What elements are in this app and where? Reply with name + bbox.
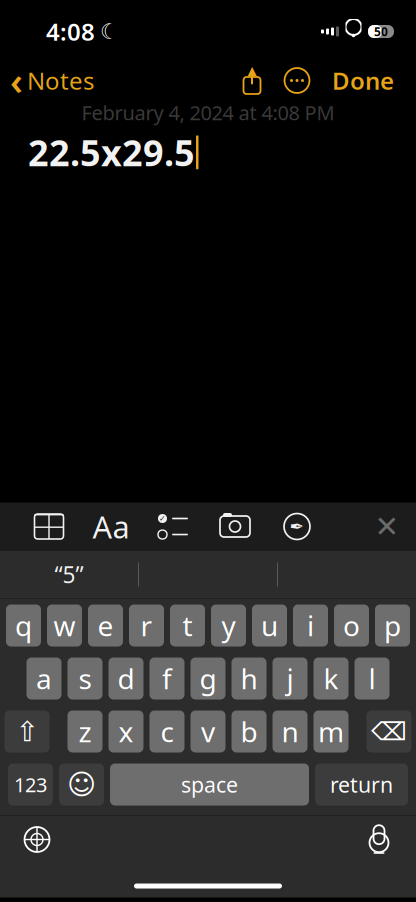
button[interactable]: space [110, 763, 309, 805]
staticText: v [201, 713, 215, 750]
staticText: o [343, 607, 360, 644]
staticText: p [384, 607, 401, 644]
staticText: a [36, 660, 52, 697]
button[interactable]: x [108, 710, 143, 752]
staticText: b [240, 713, 257, 750]
staticText: i [307, 607, 314, 644]
button[interactable]: Delete [366, 710, 411, 752]
button[interactable]: g [190, 657, 225, 699]
staticText: d [117, 660, 134, 697]
button[interactable]: f [149, 657, 184, 699]
staticText: r [140, 607, 152, 644]
button[interactable]: Table [18, 504, 80, 548]
button[interactable]: r [129, 604, 164, 646]
button[interactable]: ‹ [0, 58, 102, 102]
staticText: z [78, 713, 91, 750]
staticText: y [221, 607, 235, 644]
staticText: m [318, 713, 344, 750]
staticText: f [162, 660, 172, 697]
staticText: k [323, 660, 338, 697]
staticText: ✒ [289, 517, 304, 536]
button[interactable]: d [108, 657, 143, 699]
button[interactable]: Markup [266, 504, 328, 548]
staticText: ⌫ [371, 717, 407, 746]
button[interactable]: b [231, 710, 266, 752]
button[interactable]: j [272, 657, 307, 699]
staticText: j [286, 660, 293, 697]
button[interactable]: w [47, 604, 82, 646]
button[interactable]: Shift [4, 710, 49, 752]
staticText: l [368, 660, 375, 697]
staticText: Done [332, 65, 394, 96]
button[interactable]: i [293, 604, 328, 646]
staticText: w [53, 607, 75, 644]
staticText: ▲ [247, 64, 256, 77]
button[interactable]: Change keyboard [10, 817, 64, 861]
staticText: 123 [14, 771, 47, 798]
staticText: return [330, 770, 393, 799]
staticText: n [281, 713, 298, 750]
button[interactable]: Done [320, 58, 406, 102]
button[interactable]: e [88, 604, 123, 646]
button[interactable]: Dictate [352, 817, 406, 861]
button[interactable]: o [334, 604, 369, 646]
staticText: 50 [374, 23, 388, 39]
button[interactable]: Share [230, 58, 274, 102]
button[interactable]: Checklist [142, 504, 204, 548]
staticText: c [160, 713, 173, 750]
button[interactable]: Camera [204, 504, 266, 548]
button[interactable]: c [149, 710, 184, 752]
staticText: Aa [92, 506, 129, 547]
staticText: u [261, 607, 278, 644]
button[interactable]: 123 [8, 763, 53, 805]
staticText: February 4, 2024 at 4:08 PM [81, 99, 334, 126]
staticText: ✓ [159, 514, 166, 523]
staticText: ☺ [67, 769, 96, 800]
staticText: space [181, 770, 238, 799]
staticText: g [199, 660, 216, 697]
staticText: 22.5x29.5 [28, 128, 195, 176]
staticText: t [182, 607, 192, 644]
button[interactable]: u [252, 604, 287, 646]
button[interactable]: Close keyboard [362, 504, 412, 548]
staticText: s [78, 660, 91, 697]
button[interactable]: p [375, 604, 410, 646]
button[interactable]: “5” [0, 553, 138, 595]
button[interactable]: q [6, 604, 41, 646]
staticText: h [240, 660, 257, 697]
button[interactable]: z [67, 710, 102, 752]
button[interactable]: a [26, 657, 61, 699]
staticText: q [15, 607, 32, 644]
button[interactable]: More [274, 58, 320, 102]
staticText: ‹ [10, 56, 23, 105]
staticText: x [118, 713, 133, 750]
button[interactable]: return [315, 763, 408, 805]
button[interactable]: Format [80, 504, 142, 548]
staticText: e [97, 607, 113, 644]
staticText: ✕ [374, 510, 399, 543]
button[interactable]: h [231, 657, 266, 699]
button[interactable]: y [211, 604, 246, 646]
button[interactable]: m [313, 710, 348, 752]
staticText: ⇧ [15, 716, 38, 747]
button[interactable]: s [67, 657, 102, 699]
staticText: Notes [27, 65, 94, 96]
button[interactable]: n [272, 710, 307, 752]
button[interactable]: t [170, 604, 205, 646]
staticText: “5” [54, 559, 83, 589]
button[interactable]: l [354, 657, 389, 699]
staticText: ☾ [100, 19, 119, 44]
button[interactable]: k [313, 657, 348, 699]
staticText: 4:08 [46, 16, 95, 47]
button[interactable]: Emoji [59, 763, 104, 805]
button[interactable]: v [190, 710, 225, 752]
